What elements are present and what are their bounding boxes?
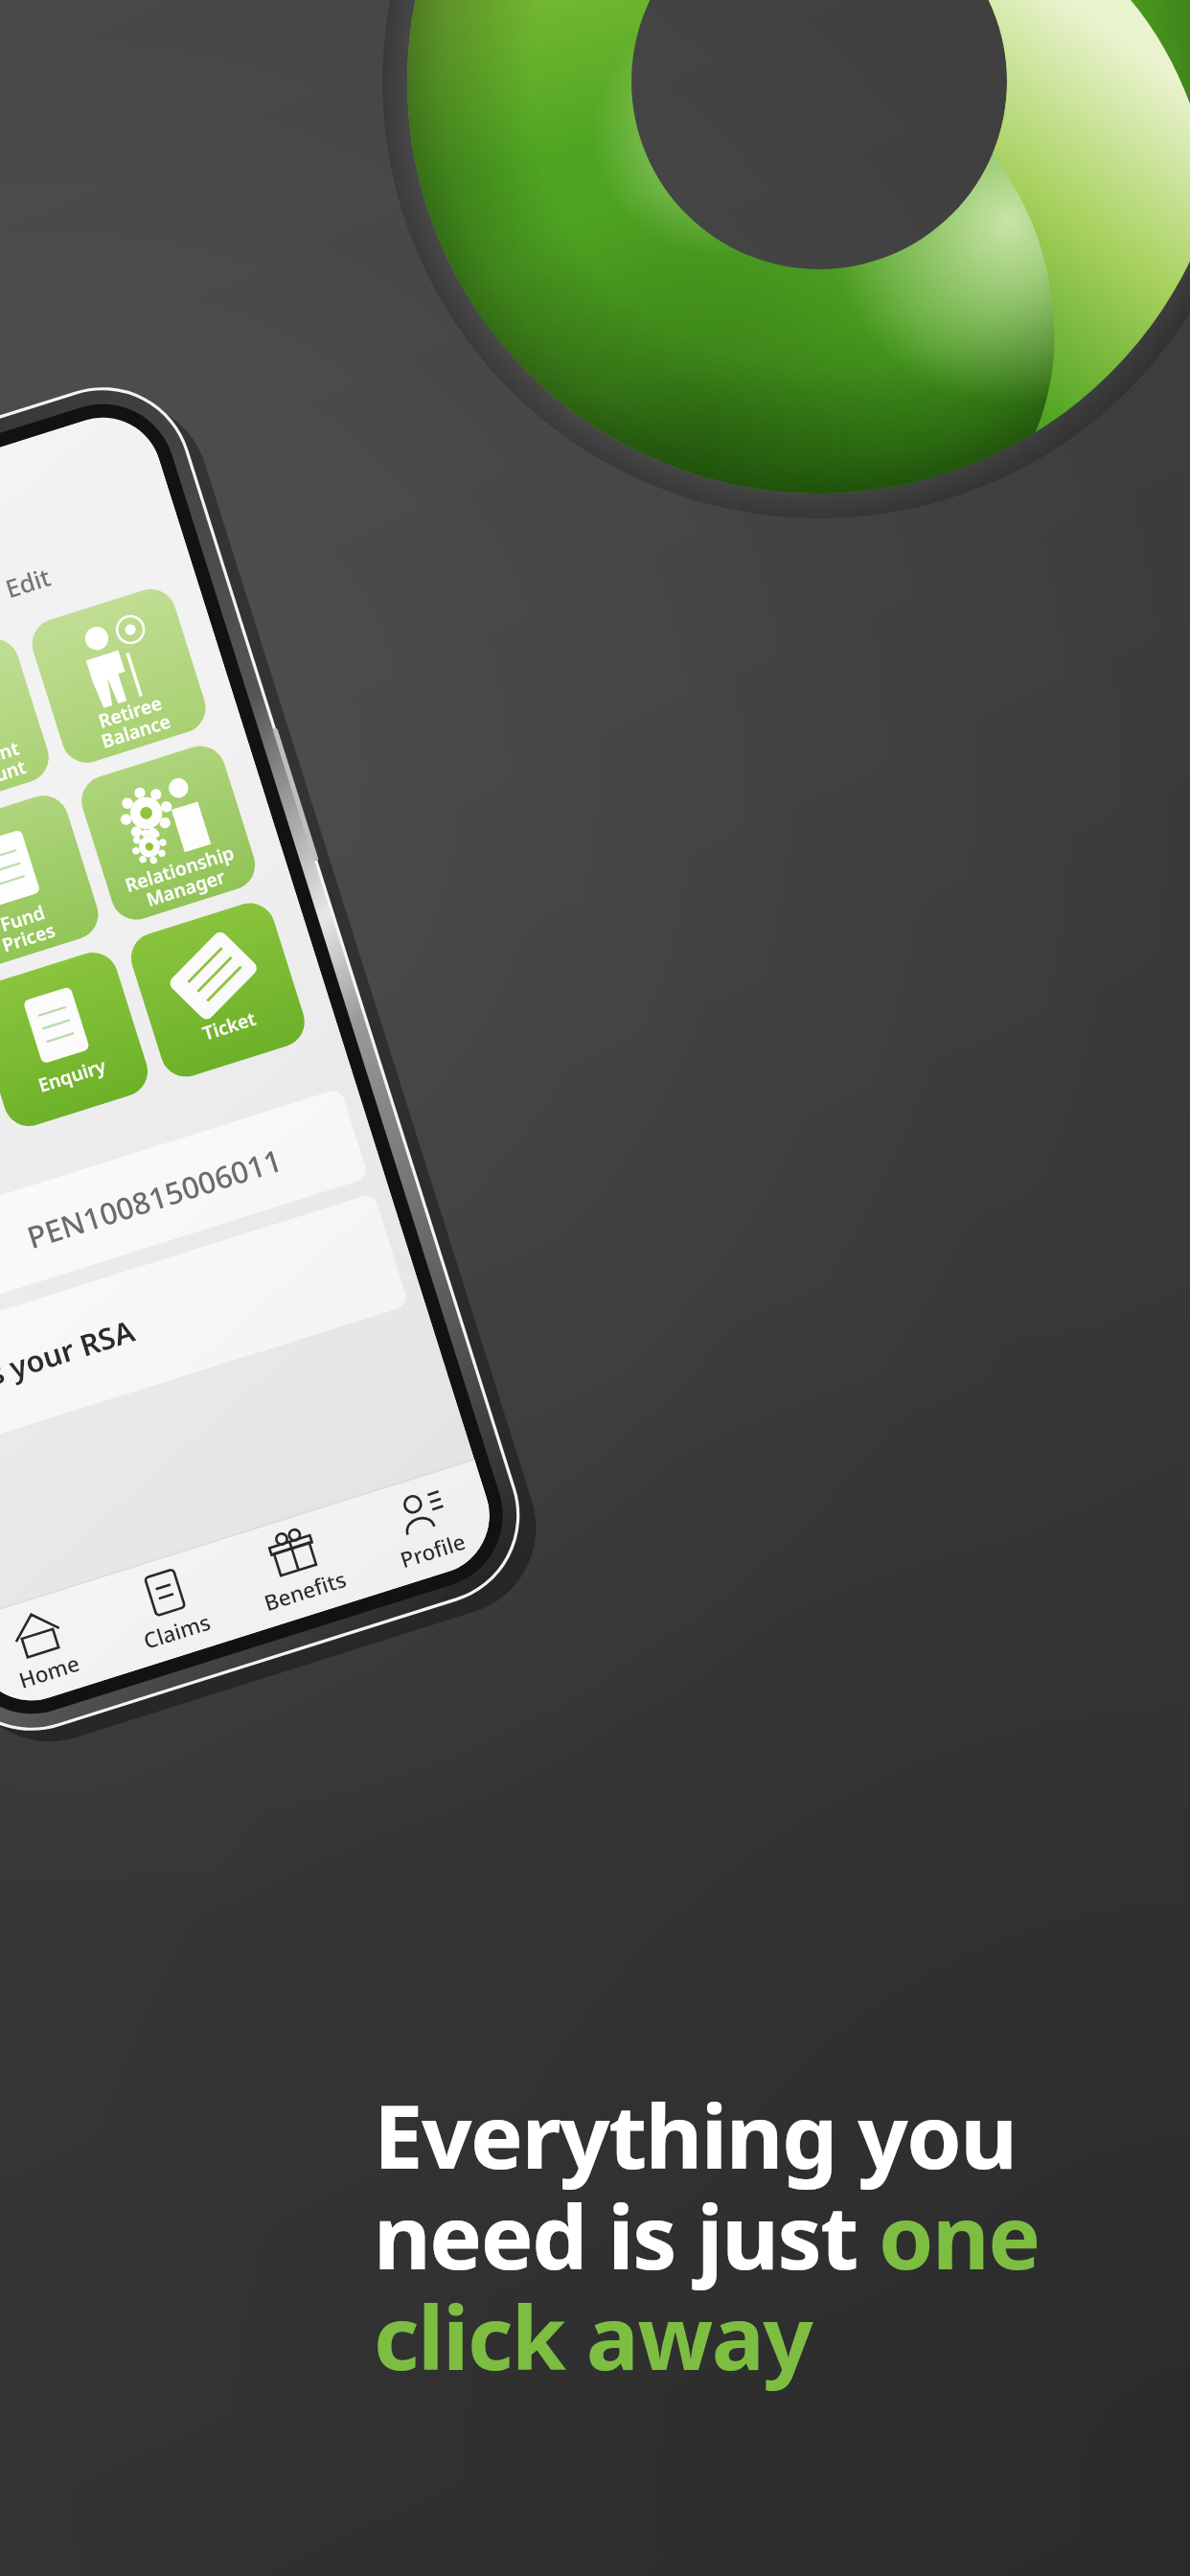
button[interactable]: Everything you need is just one click aw… <box>0 0 1190 2576</box>
